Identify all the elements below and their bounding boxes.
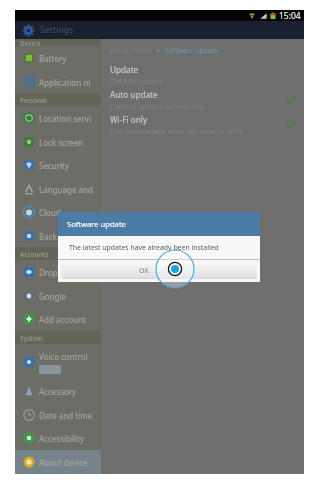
- staticText: Software update: [67, 219, 126, 229]
- staticText: Application m: [39, 77, 91, 88]
- staticText: Voice control: [39, 351, 88, 362]
- staticText: Update: [110, 64, 139, 75]
- staticText: Accessory: [39, 386, 77, 397]
- staticText: OK: [139, 266, 149, 276]
- staticText: Wi-Fi only: [110, 114, 148, 125]
- button[interactable]: Application m: [15, 70, 101, 94]
- staticText: Accessibility: [39, 433, 85, 444]
- button[interactable]: Security: [15, 153, 101, 177]
- staticText: Check for updates automatically: [110, 102, 204, 110]
- staticText: About device: [110, 46, 152, 55]
- button[interactable]: Wi-Fi only: [101, 112, 304, 137]
- staticText: About device: [39, 457, 88, 468]
- staticText: 15:04: [279, 10, 301, 21]
- button[interactable]: Accessory: [15, 379, 101, 403]
- staticText: System: [20, 334, 43, 342]
- staticText: Auto update: [110, 89, 158, 100]
- button[interactable]: Settings: [23, 24, 74, 36]
- button[interactable]: Add account: [15, 307, 101, 331]
- staticText: Google: [39, 291, 66, 302]
- button[interactable]: Auto update: [101, 87, 304, 112]
- staticText: Lock screen: [39, 137, 84, 148]
- staticText: Check for updates: [110, 77, 163, 85]
- staticText: Language and: [39, 184, 93, 195]
- button[interactable]: Date and time: [15, 403, 101, 427]
- button[interactable]: Cloud: [15, 200, 101, 224]
- button[interactable]: Dropb: [15, 260, 101, 284]
- button[interactable]: OK: [61, 263, 257, 279]
- staticText: Date and time: [39, 410, 93, 421]
- button[interactable]: Lock screen: [15, 130, 101, 154]
- staticText: The latest updates have already been ins…: [69, 243, 219, 252]
- button[interactable]: Update: [101, 62, 304, 87]
- button[interactable]: About device: [15, 450, 101, 474]
- staticText: Location servi: [39, 113, 91, 124]
- staticText: Software update: [165, 46, 218, 55]
- button[interactable]: Language and: [15, 177, 101, 201]
- button[interactable]: Google: [15, 284, 101, 308]
- other: Settings: [23, 25, 34, 36]
- staticText: Device: [20, 39, 41, 46]
- staticText: Personal: [20, 96, 47, 104]
- staticText: Cloud: [39, 207, 61, 218]
- staticText: Back: [39, 231, 57, 242]
- button[interactable]: Voice control: [15, 344, 101, 380]
- staticText: Security: [39, 160, 70, 171]
- staticText: Settings: [40, 24, 74, 36]
- staticText: Battery: [39, 53, 67, 64]
- staticText: Dropb: [39, 267, 63, 278]
- button[interactable]: Back: [15, 224, 101, 248]
- staticText: Only downloadable when connected via Wi-…: [110, 127, 242, 135]
- staticText: Accounts: [20, 250, 49, 258]
- button[interactable]: Accessibility: [15, 426, 101, 450]
- staticText: Add account: [39, 314, 86, 325]
- button[interactable]: Battery: [15, 46, 101, 70]
- button[interactable]: Location servi: [15, 106, 101, 130]
